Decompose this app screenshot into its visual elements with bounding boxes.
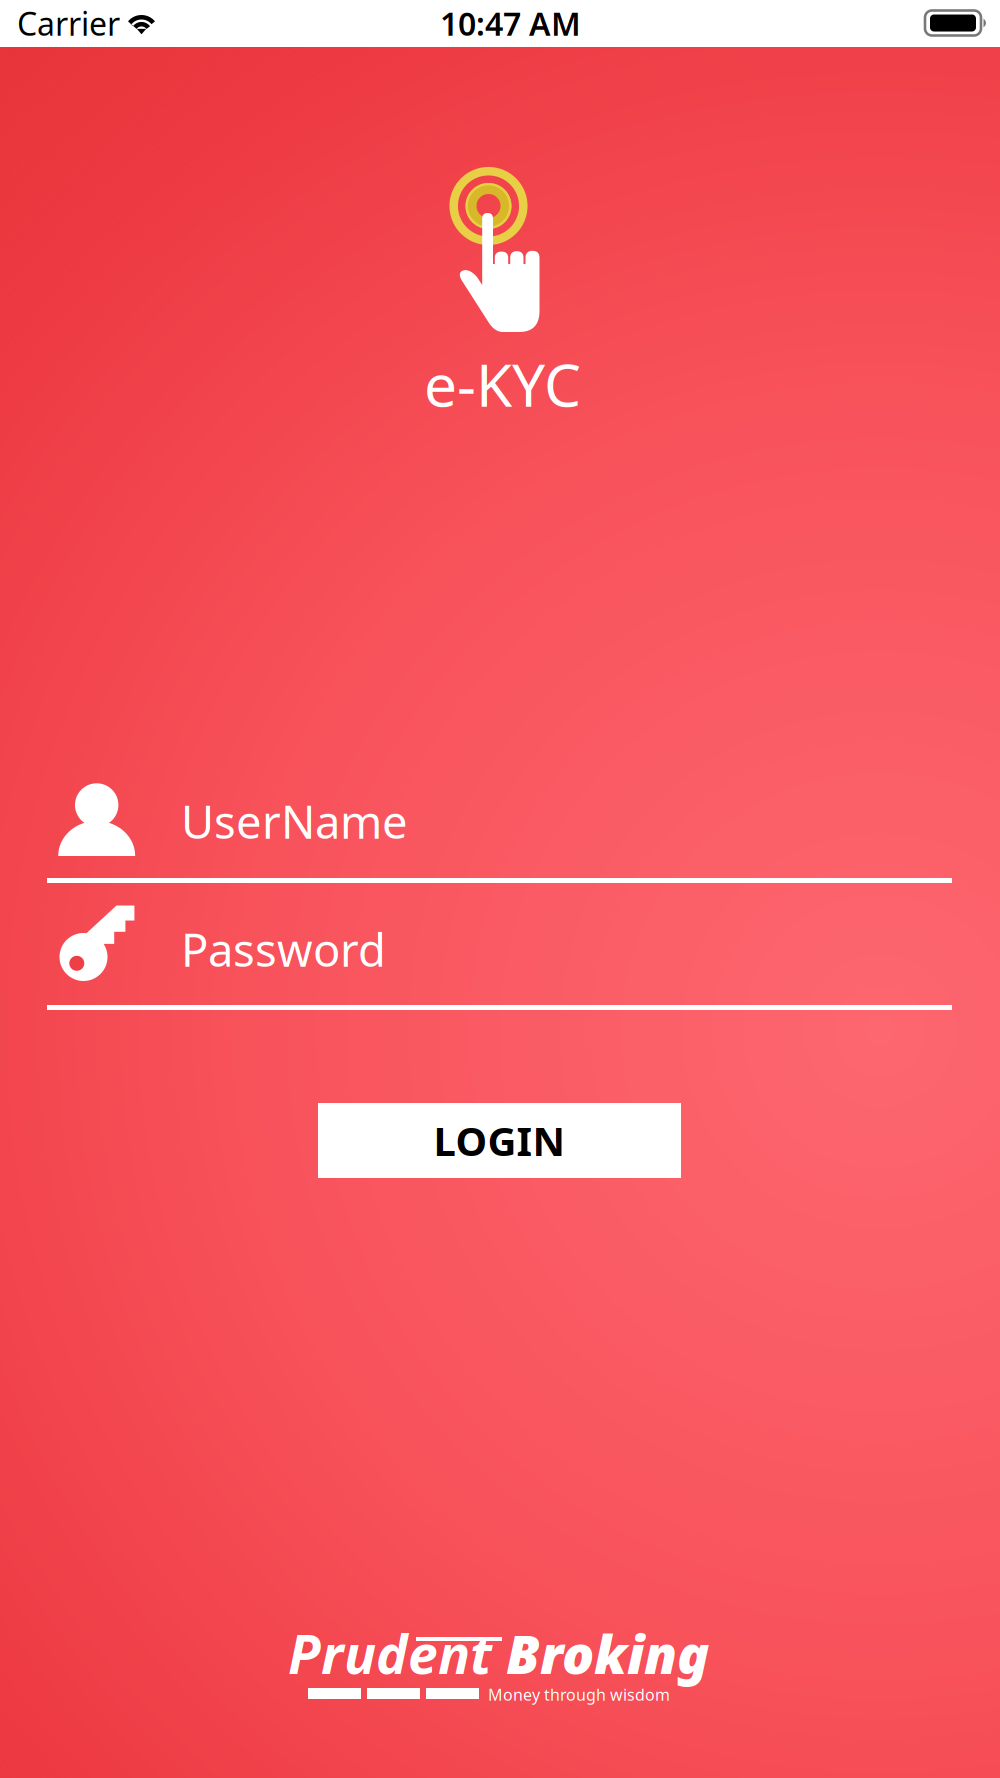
- staticText: LOGIN: [433, 1114, 565, 1167]
- staticText: Prudent: [288, 1618, 492, 1689]
- button[interactable]: Password: [47, 884, 952, 1016]
- staticText: Password: [181, 919, 386, 979]
- staticText: Broking: [492, 1618, 709, 1689]
- staticText: Carrier: [17, 2, 120, 44]
- staticText: Money through wisdom: [488, 1684, 670, 1705]
- staticText: e-KYC: [424, 345, 581, 423]
- button[interactable]: UserName: [47, 764, 952, 884]
- staticText: 10:47 AM: [440, 2, 581, 44]
- button[interactable]: LOGIN: [318, 1103, 681, 1178]
- staticText: UserName: [181, 791, 408, 851]
